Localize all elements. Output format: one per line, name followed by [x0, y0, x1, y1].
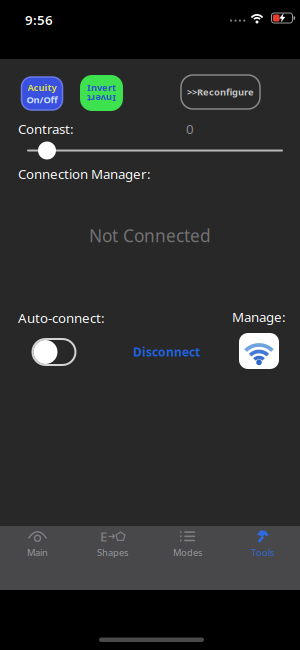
staticText: Disconnect: [133, 344, 200, 360]
staticText: Main: [27, 546, 48, 559]
staticText: >>Reconfigure: [187, 86, 254, 98]
staticText: Shapes: [97, 546, 128, 559]
staticText: Tools: [251, 546, 274, 559]
button[interactable]: Manage Wi-Fi: [239, 333, 279, 369]
staticText: 9:56: [25, 11, 53, 29]
staticText: Acuity: [27, 81, 56, 93]
staticText: Not Connected: [89, 224, 211, 247]
button[interactable]: Acuity: [21, 77, 62, 110]
button[interactable]: Disconnect: [133, 344, 200, 360]
button[interactable]: Invert: [80, 75, 123, 111]
staticText: E: [100, 527, 107, 545]
button[interactable]: Tools: [225, 528, 300, 560]
button[interactable]: Main: [0, 528, 75, 560]
staticText: Auto-connect:: [18, 309, 105, 327]
button[interactable]: Modes: [150, 528, 225, 560]
button[interactable]: >>Reconfigure: [181, 75, 260, 109]
staticText: On/Off: [26, 93, 57, 106]
staticText: Contrast:: [18, 120, 74, 138]
staticText: Modes: [173, 546, 202, 559]
staticText: Manage:: [232, 308, 286, 326]
button[interactable]: E: [75, 528, 150, 560]
staticText: Connection Manager:: [18, 165, 151, 183]
button[interactable]: Auto-connect: [32, 339, 75, 365]
staticText: Invert: [87, 92, 116, 105]
staticText: 0: [186, 120, 194, 138]
staticText: Invert: [87, 81, 116, 93]
